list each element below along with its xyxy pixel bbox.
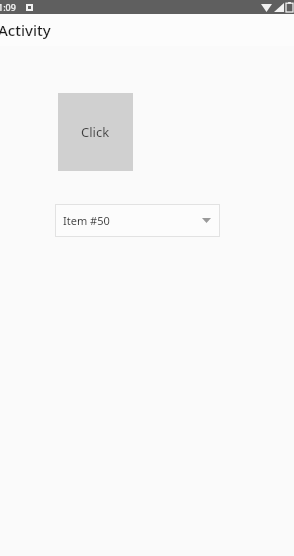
staticText: Item #50 bbox=[63, 213, 110, 228]
staticText: 1:09 bbox=[0, 1, 16, 13]
other: Open dropdown bbox=[202, 218, 211, 223]
staticText: Click bbox=[81, 123, 110, 141]
button[interactable]: Item #50 bbox=[55, 204, 220, 237]
button[interactable]: Click bbox=[58, 93, 133, 171]
staticText: Activity bbox=[0, 20, 51, 40]
